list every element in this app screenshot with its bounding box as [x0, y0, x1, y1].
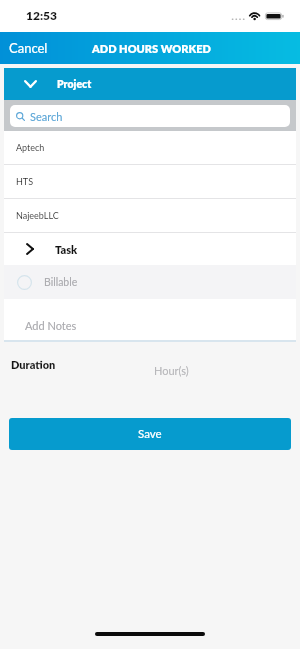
button[interactable]: NajeebLLC: [4, 199, 296, 232]
staticText: Duration: [11, 358, 56, 371]
button[interactable]: Collapse project list: [4, 68, 296, 100]
staticText: Aptech: [16, 142, 45, 153]
staticText: Add Notes: [25, 319, 77, 332]
staticText: HTS: [16, 176, 34, 187]
button[interactable]: HTS: [4, 165, 296, 198]
staticText: ADD HOURS WORKED: [92, 42, 211, 55]
button[interactable]: Aptech: [4, 131, 296, 164]
other: Collapse project list: [24, 80, 37, 88]
staticText: Hour(s): [154, 364, 189, 377]
staticText: 12:53: [26, 8, 58, 22]
staticText: NajeebLLC: [16, 210, 59, 221]
button[interactable]: Add Notes: [4, 299, 296, 340]
staticText: Search: [30, 110, 63, 123]
staticText: Billable: [44, 276, 78, 289]
button[interactable]: Billable: [4, 265, 296, 299]
button[interactable]: Search: [10, 105, 290, 127]
button[interactable]: Save: [9, 418, 291, 450]
button[interactable]: Task: [4, 233, 296, 265]
staticText: Project: [57, 78, 92, 91]
button[interactable]: Cancel: [0, 35, 57, 61]
staticText: Cancel: [9, 40, 48, 56]
staticText: Task: [55, 243, 78, 256]
staticText: Save: [138, 427, 162, 441]
